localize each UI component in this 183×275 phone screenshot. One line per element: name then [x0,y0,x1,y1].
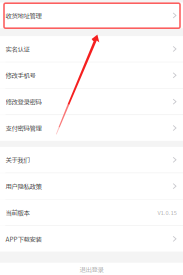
button[interactable]: 收货地址管理 [0,2,183,28]
staticText: 用户隐私政策 [5,181,41,191]
staticText: V1.0.15 [157,208,176,216]
button[interactable]: 修改手机号 [0,62,183,88]
staticText: APP下载安装 [5,234,41,243]
button[interactable]: 用户隐私政策 [0,173,183,199]
button[interactable]: 修改登录密码 [0,89,183,114]
staticText: 退出登录 [79,265,103,274]
button[interactable]: 当前版本 [0,200,183,225]
staticText: 修改手机号 [5,71,35,80]
staticText: 当前版本 [5,208,29,217]
button[interactable]: 退出登录 [0,263,183,275]
button[interactable]: 支付密码管理 [0,115,183,141]
staticText: 收货地址管理 [5,11,41,20]
staticText: 实名认证 [5,44,29,54]
button[interactable]: 实名认证 [0,36,183,62]
staticText: 关于我们 [5,155,29,164]
button[interactable]: 关于我们 [0,147,183,173]
button[interactable]: APP下载安装 [0,226,183,252]
staticText: 修改登录密码 [5,97,41,106]
staticText: 支付密码管理 [5,123,41,133]
